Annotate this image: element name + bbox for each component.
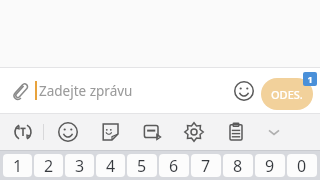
button[interactable]: Clipboard [222, 118, 250, 146]
button[interactable]: Emoji [54, 118, 82, 146]
staticText: 8 [233, 155, 243, 177]
button[interactable]: Emoji [230, 77, 258, 105]
button[interactable]: GIF [138, 118, 166, 146]
button[interactable]: Attach [6, 77, 34, 105]
button[interactable]: Text mode [9, 118, 37, 146]
staticText: 4 [106, 155, 116, 177]
button[interactable]: Zadejte zprávu [39, 68, 133, 113]
staticText: ODES. [271, 87, 303, 102]
button[interactable]: 6 [159, 154, 189, 177]
staticText: 1 [13, 155, 23, 177]
button[interactable]: 3 [65, 154, 94, 177]
staticText: 0 [297, 155, 307, 177]
button[interactable]: 8 [223, 154, 253, 177]
staticText: 2 [44, 155, 54, 177]
button[interactable]: Stickers [96, 118, 124, 146]
button[interactable]: ODES. [261, 78, 313, 110]
staticText: 9 [265, 155, 275, 177]
button[interactable]: Collapse [260, 118, 288, 146]
staticText: 5 [137, 155, 147, 177]
button[interactable]: 4 [96, 154, 125, 177]
button[interactable]: 9 [255, 154, 285, 177]
staticText: 7 [201, 155, 211, 177]
button[interactable]: 2 [34, 154, 63, 177]
button[interactable]: 0 [287, 154, 317, 177]
staticText: 6 [169, 155, 179, 177]
staticText: Zadejte zprávu [39, 82, 133, 100]
button[interactable]: Settings [180, 118, 208, 146]
staticText: 1 [307, 73, 313, 85]
button[interactable]: 1 [3, 154, 32, 177]
button[interactable]: 5 [127, 154, 157, 177]
staticText: 3 [75, 155, 85, 177]
button[interactable]: 7 [191, 154, 221, 177]
